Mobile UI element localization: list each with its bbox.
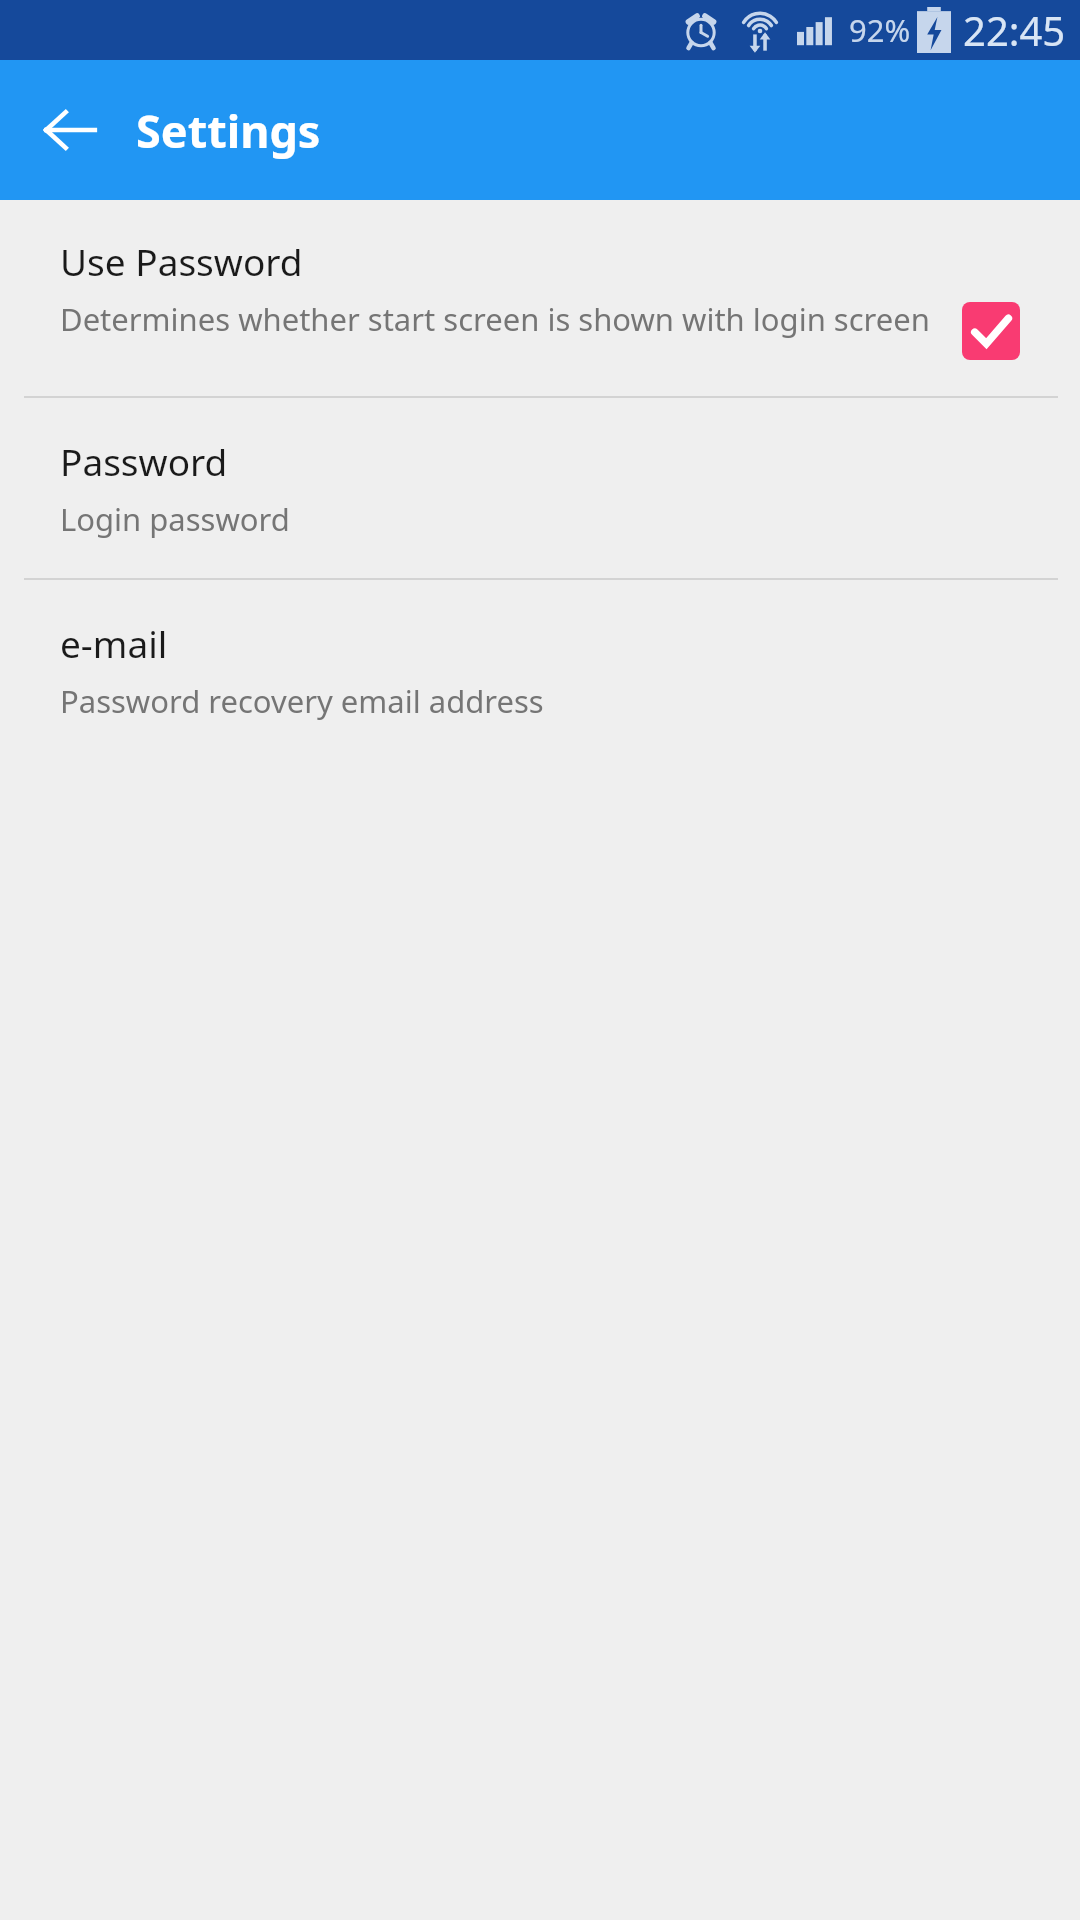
button[interactable]: e-mail — [0, 580, 1080, 760]
staticText: 92% — [849, 9, 911, 51]
staticText: e-mail — [60, 618, 168, 668]
staticText: Determines whether start screen is shown… — [60, 298, 930, 340]
staticText: Login password — [60, 498, 290, 540]
button[interactable]: Use Password enabled — [962, 302, 1020, 360]
staticText: Settings — [136, 100, 321, 161]
button[interactable]: Use Password — [0, 200, 1080, 396]
staticText: Password — [60, 436, 228, 486]
button[interactable]: Password — [0, 398, 1080, 578]
staticText: Use Password — [60, 236, 303, 286]
button[interactable]: Back — [26, 86, 114, 174]
staticText: 22:45 — [963, 3, 1066, 57]
staticText: Password recovery email address — [60, 680, 544, 722]
